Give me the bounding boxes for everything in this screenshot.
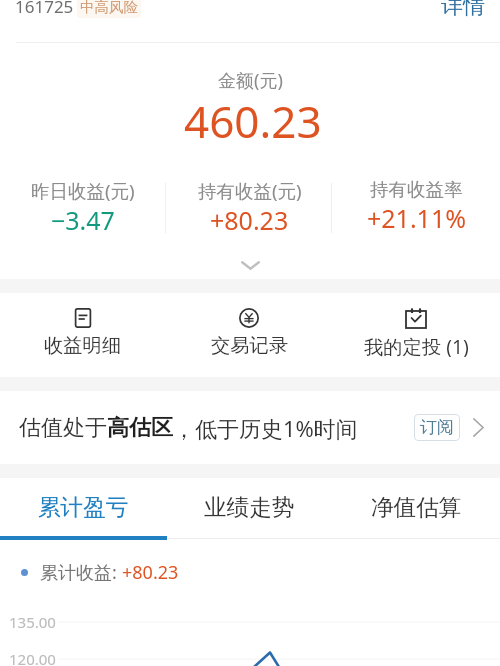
staticText: 交易记录	[211, 333, 289, 357]
staticText: +80.23	[122, 560, 179, 585]
button[interactable]: 我的定投 (1)	[333, 293, 500, 365]
button[interactable]: 交易记录	[166, 293, 333, 365]
staticText: +21.11%	[367, 201, 466, 235]
staticText: −3.47	[51, 203, 115, 237]
button[interactable]: 持有收益率	[333, 178, 500, 235]
staticText: 昨日收益(元)	[31, 178, 135, 203]
staticText: 持有收益(元)	[198, 178, 302, 203]
staticText: 120.00	[9, 649, 56, 666]
staticText: 中高风险	[80, 0, 138, 16]
staticText: 金额(元)	[218, 68, 283, 93]
staticText: ，低于历史1%时间	[173, 413, 358, 443]
button[interactable]: 累计盈亏	[0, 479, 166, 535]
staticText: 订阅	[420, 417, 454, 438]
staticText: 估值处于	[19, 414, 107, 442]
staticText: 累计盈亏	[38, 493, 129, 521]
staticText: 135.00	[9, 612, 56, 632]
staticText: 净值估算	[371, 493, 462, 521]
staticText: 高估区	[107, 414, 173, 442]
button[interactable]: 详情	[441, 0, 485, 20]
button[interactable]: Expand	[0, 253, 500, 277]
button[interactable]: 161725	[15, 0, 141, 18]
staticText: 收益明细	[44, 333, 122, 357]
button[interactable]: 业绩走势	[166, 479, 333, 535]
staticText: 持有收益率	[370, 178, 463, 201]
button[interactable]: 收益明细	[0, 293, 166, 365]
button[interactable]: 持有收益(元)	[166, 178, 333, 237]
staticText: 460.23	[184, 91, 322, 151]
button[interactable]: 净值估算	[333, 479, 500, 535]
staticText: 业绩走势	[204, 493, 295, 521]
button[interactable]: 订阅	[414, 414, 460, 441]
staticText: +80.23	[210, 203, 289, 237]
staticText: 累计收益:	[40, 560, 122, 585]
staticText: 详情	[441, 0, 485, 20]
staticText: 我的定投 (1)	[364, 333, 469, 357]
staticText: 161725	[15, 0, 74, 18]
button[interactable]: 昨日收益(元)	[0, 178, 166, 237]
button[interactable]: 估值处于	[0, 391, 500, 464]
